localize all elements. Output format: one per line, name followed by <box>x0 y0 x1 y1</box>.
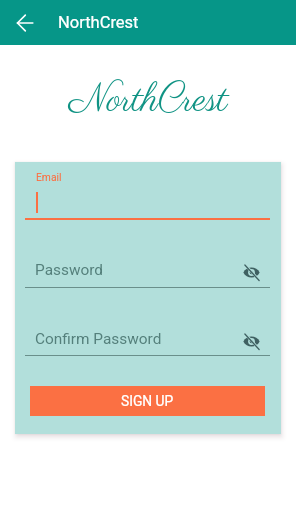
staticText: SIGN UP <box>121 393 174 409</box>
button[interactable]: Back <box>2 0 47 45</box>
staticText: NorthCrest <box>58 13 139 32</box>
button[interactable]: SIGN UP <box>30 386 265 416</box>
staticText: NorthCrest <box>69 75 228 127</box>
staticText: Email <box>36 171 62 183</box>
button[interactable]: Show confirm password <box>239 329 263 353</box>
staticText: Password <box>35 261 103 279</box>
button[interactable]: Show password <box>239 260 263 284</box>
staticText: Confirm Password <box>35 330 162 348</box>
